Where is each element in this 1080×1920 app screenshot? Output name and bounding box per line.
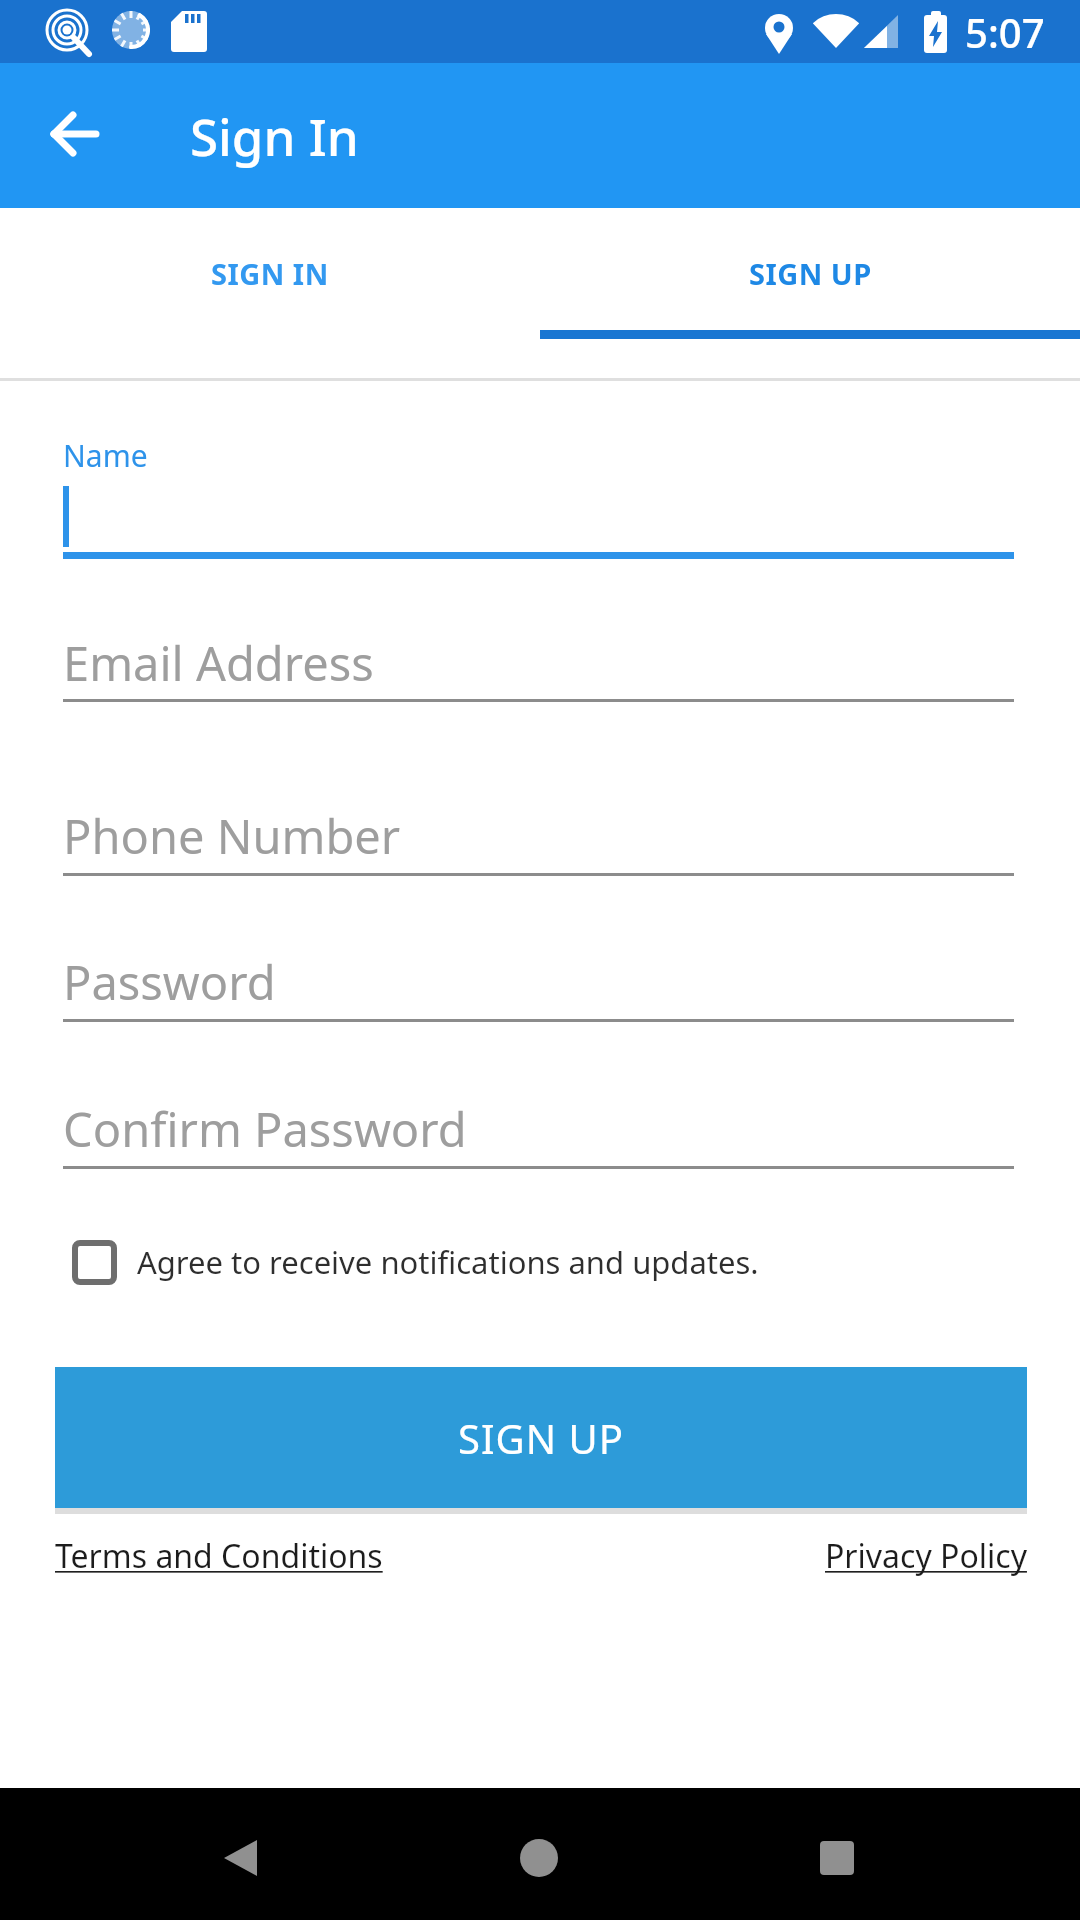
button[interactable]: SIGN UP (55, 1367, 1027, 1508)
staticText: SIGN UP (749, 254, 872, 293)
button[interactable] (479, 1788, 599, 1920)
button[interactable]: Email Address (63, 630, 1014, 696)
button[interactable]: SIGN UP (540, 208, 1080, 338)
staticText: Email Address (63, 631, 374, 695)
button[interactable] (180, 1788, 300, 1920)
staticText: Phone Number (63, 804, 401, 868)
button[interactable] (63, 480, 1014, 552)
button[interactable]: Password (63, 949, 1014, 1015)
staticText: Terms and Conditions (55, 1534, 383, 1578)
button[interactable]: SIGN IN (0, 208, 540, 338)
button[interactable] (777, 1788, 897, 1920)
button[interactable]: Terms and Conditions (55, 1528, 455, 1584)
button[interactable]: Phone Number (63, 803, 1014, 869)
staticText: Name (63, 435, 148, 476)
staticText: Sign In (190, 101, 359, 170)
button[interactable] (40, 99, 110, 169)
staticText: Password (63, 950, 276, 1014)
staticText: SIGN UP (458, 1411, 624, 1465)
button[interactable]: Privacy Policy (700, 1528, 1027, 1584)
staticText: Privacy Policy (825, 1534, 1027, 1578)
staticText: Agree to receive notifications and updat… (137, 1241, 759, 1283)
button[interactable]: Confirm Password (63, 1096, 1014, 1162)
button[interactable] (55, 1225, 815, 1300)
staticText: Confirm Password (63, 1097, 467, 1161)
staticText: 5:07 (965, 5, 1045, 59)
staticText: SIGN IN (211, 254, 329, 293)
